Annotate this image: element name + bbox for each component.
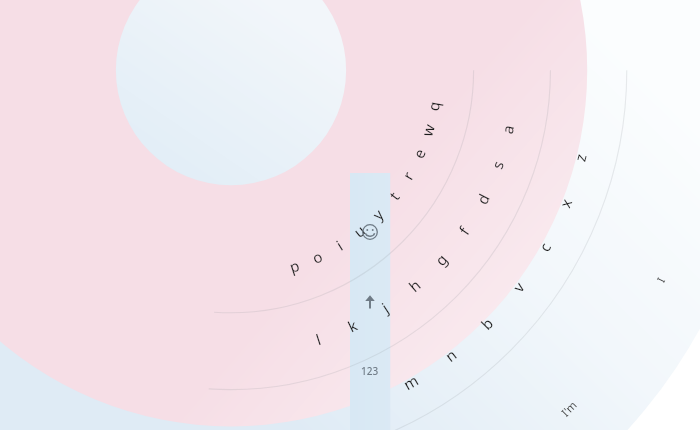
button[interactable] <box>388 143 661 166</box>
button[interactable]: Shift <box>355 287 385 317</box>
staticText: 123 <box>361 364 379 378</box>
button[interactable] <box>38 148 310 171</box>
button[interactable]: and <box>218 178 305 216</box>
staticText: o <box>289 246 300 269</box>
button[interactable]: 123 <box>355 356 385 386</box>
button[interactable]: Emoji <box>355 217 385 247</box>
button[interactable]: I'm <box>131 178 218 216</box>
